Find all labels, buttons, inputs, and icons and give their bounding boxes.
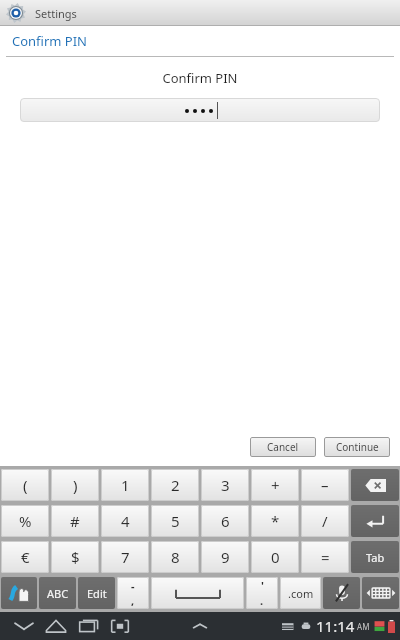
staticText: 11:14 — [316, 616, 355, 636]
button[interactable]: € — [1, 541, 49, 573]
button[interactable]: back — [351, 469, 399, 501]
staticText: 9 — [221, 547, 230, 567]
button[interactable] — [20, 98, 380, 122]
button[interactable]: ABC — [39, 577, 76, 609]
staticText: .com — [288, 586, 314, 601]
button[interactable]: 3 — [201, 469, 249, 501]
button[interactable]: = — [301, 541, 349, 573]
button[interactable]: space — [151, 577, 244, 609]
button[interactable]: Continue — [324, 437, 390, 457]
button[interactable]: / — [301, 505, 349, 537]
button[interactable]: 4 — [101, 505, 149, 537]
staticText: 6 — [221, 511, 230, 531]
staticText: Cancel — [267, 440, 299, 454]
staticText: 2 — [171, 475, 180, 495]
staticText: $ — [71, 547, 80, 567]
staticText: 1 — [121, 475, 130, 495]
staticText: Edit — [87, 586, 107, 601]
button[interactable]: Home — [40, 612, 72, 640]
button[interactable]: Tab — [351, 541, 399, 573]
button[interactable]: 2 — [151, 469, 199, 501]
button[interactable]: Screenshot — [104, 612, 136, 640]
button[interactable]: kbd — [362, 577, 399, 609]
staticText: 0 — [271, 547, 280, 567]
staticText: Tab — [366, 550, 385, 565]
button[interactable]: # — [51, 505, 99, 537]
button[interactable]: 6 — [201, 505, 249, 537]
button[interactable]: ( — [1, 469, 49, 501]
button[interactable]: 8 — [151, 541, 199, 573]
button[interactable]: .com — [280, 577, 321, 609]
button[interactable]: hand — [1, 577, 37, 609]
button[interactable]: 9 — [201, 541, 249, 573]
button[interactable]: Hide keyboard — [8, 612, 40, 640]
staticText: € — [21, 547, 30, 567]
button[interactable]: $ — [51, 541, 99, 573]
staticText: 7 — [121, 547, 130, 567]
button[interactable]: – — [301, 469, 349, 501]
button[interactable]: 5 — [151, 505, 199, 537]
staticText: ) — [73, 475, 78, 495]
staticText: % — [19, 511, 32, 531]
staticText: ABC — [47, 586, 69, 601]
button[interactable]: - — [117, 577, 149, 609]
button[interactable]: Edit — [78, 577, 115, 609]
staticText: - — [131, 578, 135, 593]
staticText: ( — [23, 475, 28, 495]
staticText: 8 — [171, 547, 180, 567]
button[interactable]: % — [1, 505, 49, 537]
staticText: + — [271, 475, 280, 495]
button[interactable]: * — [251, 505, 299, 537]
staticText: 5 — [171, 511, 180, 531]
button[interactable]: 0 — [251, 541, 299, 573]
button[interactable]: ) — [51, 469, 99, 501]
staticText: Confirm PIN — [12, 32, 87, 50]
button[interactable]: 7 — [101, 541, 149, 573]
staticText: ' — [261, 578, 264, 593]
button[interactable]: enter — [351, 505, 399, 537]
button[interactable]: 1 — [101, 469, 149, 501]
staticText: Confirm PIN — [0, 69, 400, 87]
staticText: 3 — [221, 475, 230, 495]
button[interactable]: + — [251, 469, 299, 501]
staticText: * — [271, 511, 280, 531]
staticText: AM — [355, 621, 370, 632]
staticText: # — [70, 511, 80, 531]
button[interactable]: ' — [246, 577, 278, 609]
staticText: Settings — [35, 6, 77, 21]
staticText: . — [260, 593, 264, 608]
staticText: 4 — [121, 511, 130, 531]
staticText: / — [322, 511, 328, 531]
staticText: = — [321, 547, 330, 567]
button[interactable]: Cancel — [250, 437, 316, 457]
staticText: , — [131, 593, 135, 608]
button[interactable]: Recents — [72, 612, 104, 640]
staticText: Continue — [336, 440, 379, 454]
button[interactable]: mic — [323, 577, 360, 609]
staticText: – — [321, 475, 329, 495]
